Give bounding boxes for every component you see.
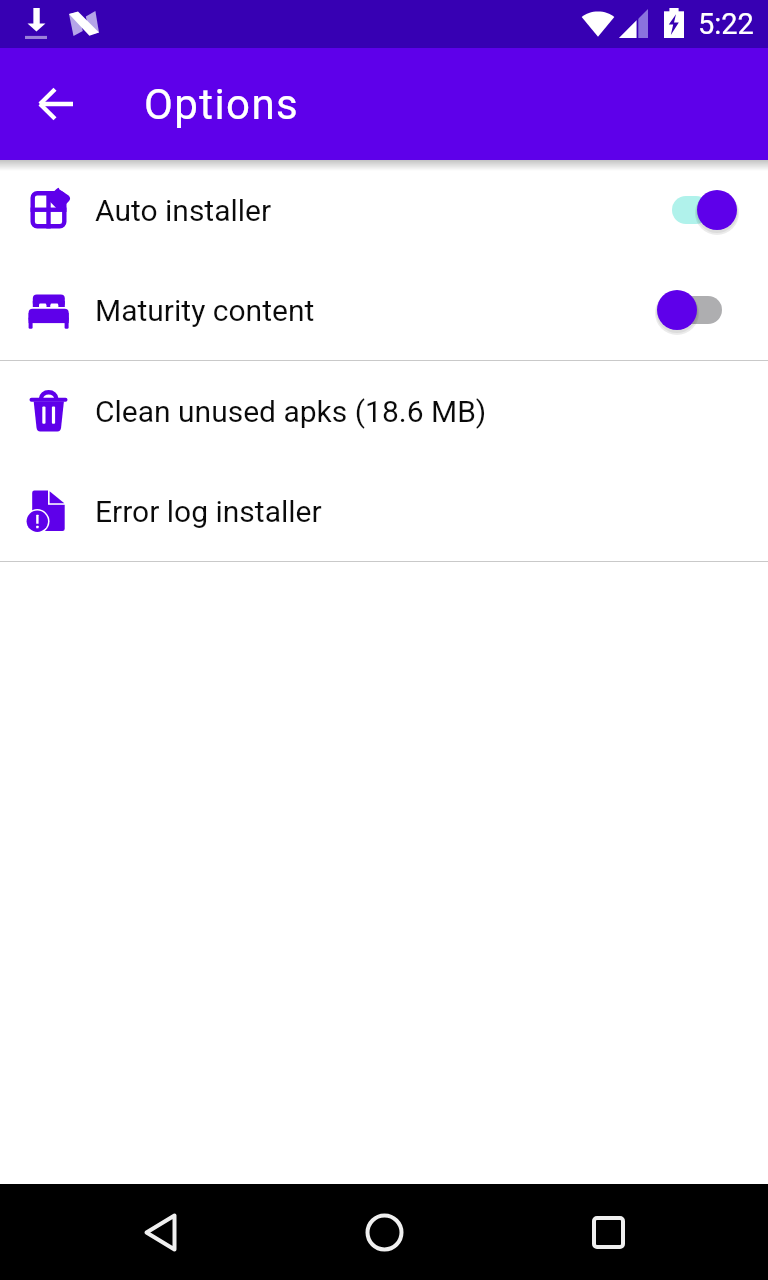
staticText: Auto installer (95, 193, 272, 228)
button[interactable]: Maturity content toggle (662, 280, 768, 340)
button[interactable]: Home (338, 1186, 430, 1278)
staticText: Error log installer (95, 494, 322, 529)
button[interactable]: Recent apps (562, 1186, 654, 1278)
staticText: Clean unused apks (18.6 MB) (95, 394, 487, 429)
staticText: Options (144, 80, 300, 129)
button[interactable]: Auto installer toggle (662, 180, 768, 240)
button[interactable]: Error log installer (0, 461, 768, 561)
staticText: 5:22 (698, 7, 754, 41)
button[interactable]: Back (114, 1186, 206, 1278)
staticText: Maturity content (95, 293, 315, 328)
button[interactable]: Clean unused apks (18.6 MB) (0, 361, 768, 461)
button[interactable]: Navigate up (16, 64, 96, 144)
button[interactable]: Maturity content (0, 260, 768, 360)
button[interactable]: Auto installer (0, 160, 768, 260)
